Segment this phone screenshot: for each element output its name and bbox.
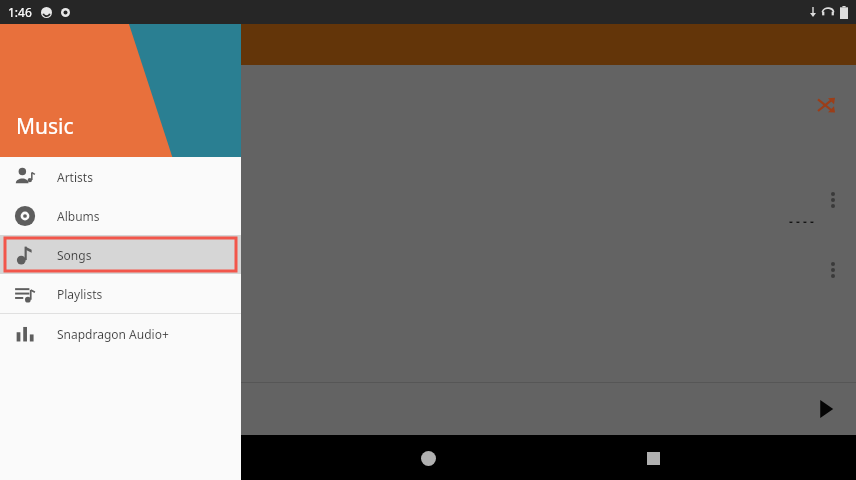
button[interactable]: Artists	[0, 157, 241, 196]
button[interactable]: Songs	[0, 235, 241, 274]
staticText: Albums	[57, 208, 100, 224]
button[interactable]: Shuffle	[808, 87, 844, 123]
staticText: Playlists	[57, 286, 103, 302]
button[interactable]: Recents	[631, 436, 675, 480]
button[interactable]: Home	[406, 436, 450, 480]
staticText: - - - -	[789, 213, 814, 229]
button[interactable]: Snapdragon Audio+	[0, 314, 241, 353]
staticText: 1:46	[8, 4, 32, 20]
staticText: Snapdragon Audio+	[57, 326, 169, 342]
button[interactable]: Playlists	[0, 274, 241, 313]
button[interactable]: More options	[818, 185, 848, 215]
button[interactable]: More options	[818, 255, 848, 285]
button[interactable]: Albums	[0, 196, 241, 235]
staticText: Artists	[57, 169, 93, 185]
staticText: Music	[16, 112, 74, 141]
staticText: Songs	[57, 247, 92, 263]
button[interactable]: Play	[806, 389, 846, 429]
